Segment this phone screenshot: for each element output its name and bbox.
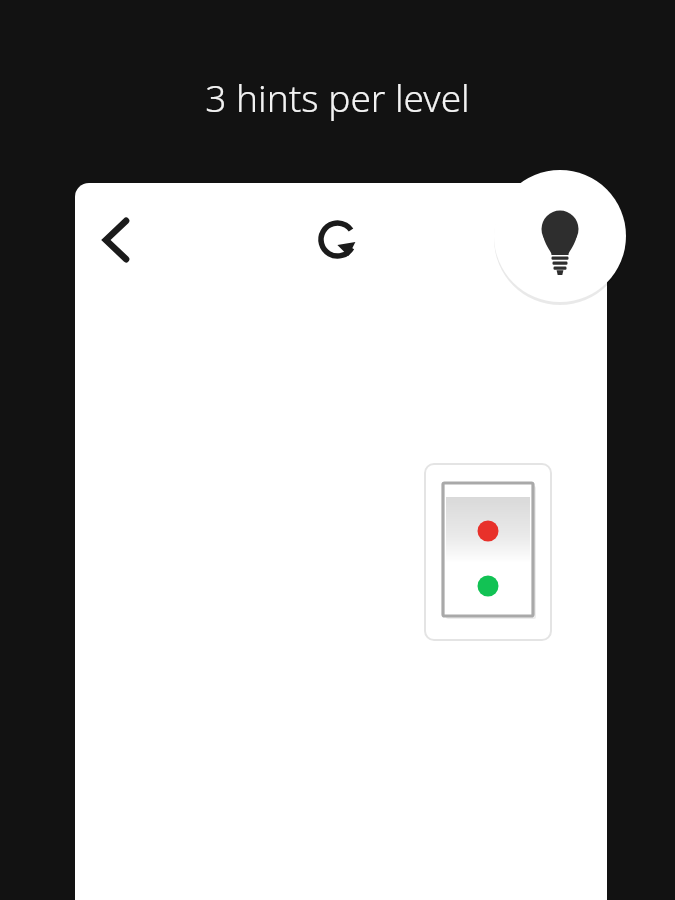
button[interactable]: Light switch (424, 463, 552, 641)
button[interactable]: Restart level (309, 211, 366, 268)
button[interactable]: Hint (492, 170, 628, 304)
staticText: 3 hints per level (205, 72, 470, 122)
button[interactable]: Back (88, 208, 144, 272)
